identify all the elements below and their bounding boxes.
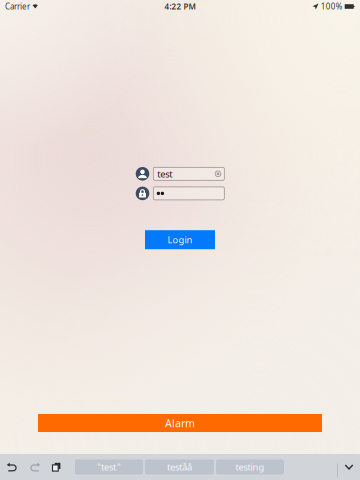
staticText: Carrier — [5, 1, 30, 12]
staticText: Login — [167, 233, 192, 246]
staticText: 100% — [321, 1, 343, 12]
staticText: test — [157, 168, 172, 180]
button[interactable]: testing — [216, 459, 284, 474]
button[interactable]: Login — [145, 230, 215, 249]
button[interactable]: "test" — [75, 459, 143, 474]
button[interactable]: Dismiss keyboard — [338, 454, 360, 480]
button[interactable]: Alarm — [38, 414, 322, 432]
button[interactable]: Paste — [46, 454, 67, 480]
staticText: teståå — [167, 461, 192, 473]
staticText: Alarm — [165, 416, 195, 430]
button[interactable]: Redo — [24, 454, 46, 480]
button[interactable]: Undo — [0, 454, 24, 480]
button[interactable]: teståå — [145, 459, 214, 474]
staticText: 4:22 PM — [164, 1, 195, 12]
staticText: testing — [235, 461, 264, 473]
staticText: "test" — [97, 461, 121, 473]
